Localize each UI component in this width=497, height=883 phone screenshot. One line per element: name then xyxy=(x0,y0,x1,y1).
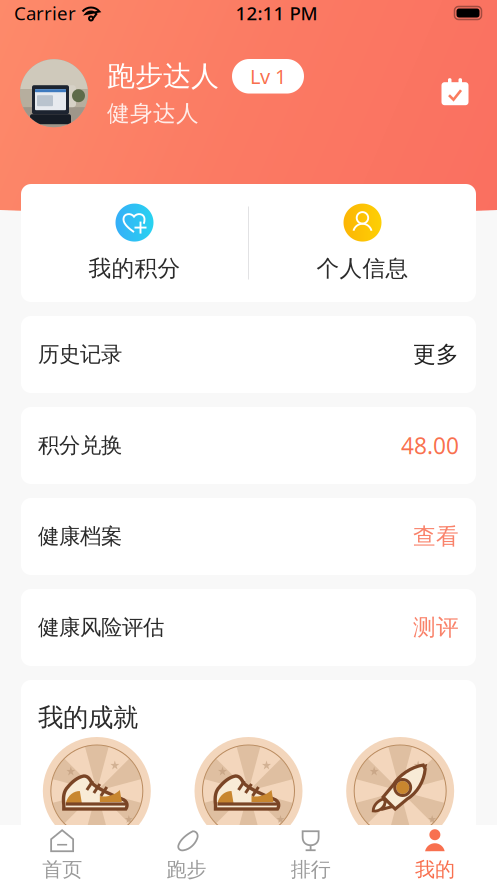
staticText: 跑步 xyxy=(166,857,206,882)
staticText: 健康档案 xyxy=(38,523,122,550)
button[interactable]: 历史记录 xyxy=(21,316,476,393)
staticText: 1公里达人 xyxy=(49,833,145,861)
staticText: 历史记录 xyxy=(38,341,122,368)
button[interactable]: Check in xyxy=(433,71,477,115)
button[interactable]: 5公里达人 xyxy=(324,735,476,859)
staticText: 5公里达人 xyxy=(352,833,448,861)
staticText: 更多 xyxy=(413,341,459,368)
button[interactable]: 积分兑换 xyxy=(21,407,476,484)
staticText: 个人信息 xyxy=(316,255,408,282)
staticText: 12:11 PM xyxy=(235,1,317,25)
button[interactable]: 首页 xyxy=(0,828,124,882)
button[interactable]: 跑步 xyxy=(124,828,248,882)
staticText: 健康风险评估 xyxy=(38,614,164,641)
staticText: 排行 xyxy=(291,857,331,882)
button[interactable]: 我的积分 xyxy=(21,204,248,282)
staticText: 我的 xyxy=(415,857,455,882)
button[interactable]: 个人信息 xyxy=(249,204,476,282)
staticText: 查看 xyxy=(413,523,459,550)
staticText: 跑步达人 xyxy=(107,59,219,93)
staticText: 首页 xyxy=(42,857,82,882)
button[interactable]: 排行 xyxy=(248,828,373,882)
staticText: 我的积分 xyxy=(88,255,180,282)
staticText: 我的成就 xyxy=(38,702,138,733)
button[interactable]: 3公里达人 xyxy=(173,735,324,859)
button[interactable]: 健康档案 xyxy=(21,498,476,575)
button[interactable]: 1公里达人 xyxy=(21,735,173,859)
staticText: 测评 xyxy=(413,614,459,641)
staticText: Carrier xyxy=(14,1,76,25)
staticText: 48.00 xyxy=(401,430,459,460)
button[interactable]: 我的 xyxy=(373,828,497,882)
staticText: 积分兑换 xyxy=(38,432,122,459)
staticText: Lv 1 xyxy=(250,63,286,90)
staticText: 健身达人 xyxy=(107,100,199,127)
button[interactable]: 健康风险评估 xyxy=(21,589,476,666)
